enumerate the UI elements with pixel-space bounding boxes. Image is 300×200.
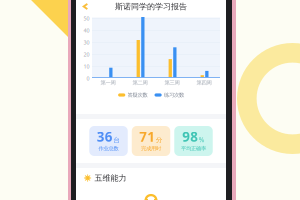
staticText: 平均正确率	[181, 145, 206, 152]
staticText: 第二周	[132, 79, 147, 86]
staticText: 10	[83, 63, 89, 70]
staticText: 第三周	[164, 79, 179, 86]
staticText: 50	[83, 15, 89, 22]
staticText: 完成用时	[141, 145, 161, 152]
staticText: 作业总数	[98, 145, 118, 152]
staticText: 练习次数	[164, 92, 184, 98]
staticText: 30	[83, 39, 89, 46]
staticText: %	[199, 135, 205, 144]
staticText: 斯诺同学的学习报告	[115, 2, 187, 11]
staticText: 五维能力	[94, 173, 126, 183]
staticText: 答疑次数	[127, 92, 147, 98]
staticText: 台	[113, 136, 120, 144]
staticText: 20	[83, 51, 89, 58]
staticText: 第一周	[100, 79, 115, 86]
staticText: 40	[83, 27, 89, 34]
staticText: 98	[182, 128, 198, 145]
button[interactable]: 98	[174, 126, 213, 156]
staticText: 分	[156, 136, 163, 144]
staticText: 第四周	[196, 79, 211, 86]
staticText: 71	[139, 128, 155, 145]
staticText: 36	[97, 128, 113, 145]
button[interactable]: Back	[79, 0, 91, 13]
button[interactable]: 36	[89, 126, 128, 156]
staticText: 0	[86, 75, 89, 82]
button[interactable]: 71	[132, 126, 170, 156]
